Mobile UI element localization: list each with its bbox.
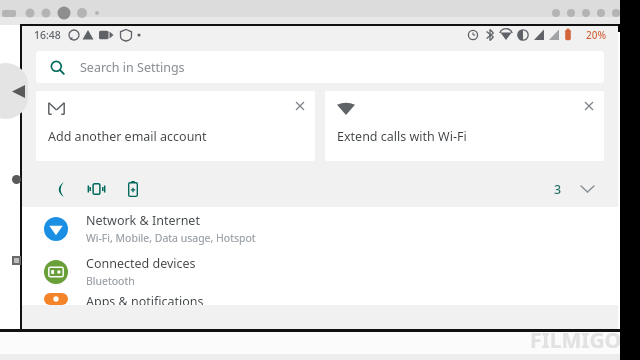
button[interactable]: Vibrate <box>81 174 111 204</box>
staticText: FILMIGO <box>530 326 622 352</box>
staticText: 3 <box>554 181 562 198</box>
button[interactable]: Stop <box>9 253 23 267</box>
button[interactable]: Marker <box>9 172 23 186</box>
button[interactable]: Dismiss suggestion <box>291 97 309 115</box>
button[interactable]: Connected devices <box>22 250 618 293</box>
button[interactable]: Apps & notifications <box>22 293 618 305</box>
staticText: Add another email account <box>48 128 207 145</box>
button[interactable]: Dismiss suggestion <box>580 97 598 115</box>
button[interactable]: Add another email account <box>36 91 315 161</box>
staticText: Apps & notifications <box>86 293 204 305</box>
staticText: Wi-Fi, Mobile, Data usage, Hotspot <box>86 231 256 245</box>
button[interactable]: Expand <box>574 176 600 202</box>
button[interactable]: Previous <box>0 63 28 119</box>
staticText: Network & Internet <box>86 212 200 229</box>
staticText: Connected devices <box>86 255 196 272</box>
staticText: Bluetooth <box>86 274 135 288</box>
staticText: 20% <box>586 28 606 42</box>
button[interactable]: Do not disturb <box>44 174 74 204</box>
button[interactable]: Battery saver <box>118 174 148 204</box>
button[interactable]: Extend calls with Wi-Fi <box>325 91 604 161</box>
button[interactable]: Search in Settings <box>36 51 604 83</box>
staticText: Extend calls with Wi-Fi <box>337 128 467 145</box>
staticText: Search in Settings <box>80 59 185 76</box>
staticText: 16:48 <box>34 28 61 42</box>
button[interactable]: Network & Internet <box>22 207 618 250</box>
